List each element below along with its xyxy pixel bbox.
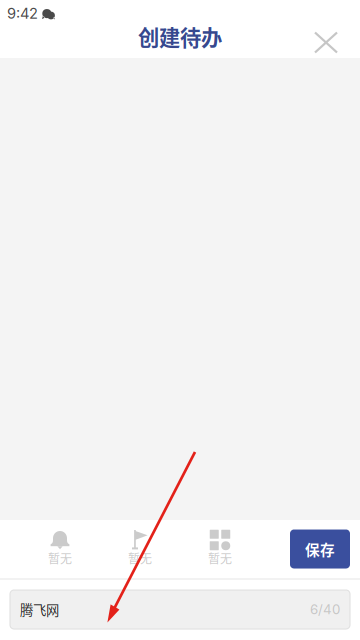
staticText: 腾飞网 bbox=[20, 600, 59, 619]
staticText: 9:42 bbox=[7, 5, 38, 22]
button[interactable]: 优先级 bbox=[100, 520, 180, 578]
button[interactable]: 提醒 bbox=[20, 520, 100, 578]
staticText: 暂无 bbox=[48, 549, 72, 567]
staticText: 创建待办 bbox=[138, 21, 222, 52]
button[interactable]: 分类 bbox=[180, 520, 260, 578]
button[interactable]: 保存 bbox=[290, 529, 350, 568]
staticText: 6/40 bbox=[310, 601, 340, 617]
staticText: 保存 bbox=[305, 538, 335, 560]
staticText: 暂无 bbox=[128, 549, 152, 567]
button[interactable]: 关闭 bbox=[303, 27, 349, 58]
staticText: 暂无 bbox=[208, 549, 232, 567]
